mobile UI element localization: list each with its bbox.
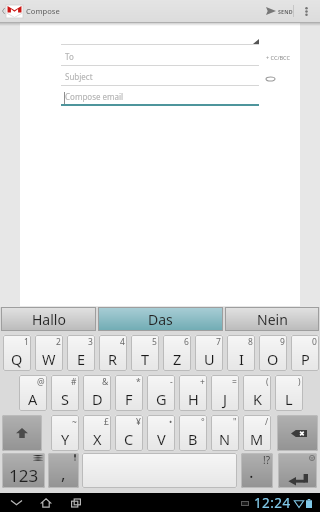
button[interactable]: Home <box>31 493 61 512</box>
button[interactable]: 8 <box>227 335 255 371</box>
button[interactable]: Attach file <box>264 74 277 83</box>
button[interactable]: 4 <box>99 335 127 371</box>
staticText: 6 <box>184 336 189 348</box>
staticText: + <box>200 376 205 388</box>
staticText: * <box>136 376 141 388</box>
button[interactable]: 7 <box>195 335 223 371</box>
staticText: 5 <box>152 336 157 348</box>
button[interactable]: & <box>83 375 111 411</box>
staticText: 9 <box>280 336 285 348</box>
button[interactable]: ~ <box>51 415 79 451</box>
button[interactable]: / <box>243 415 271 451</box>
staticText: 4 <box>120 336 125 348</box>
button[interactable]: ¥ <box>115 415 143 451</box>
staticText: B <box>188 429 198 449</box>
button[interactable]: Das <box>98 307 223 331</box>
staticText: O <box>267 349 279 369</box>
staticText: W <box>42 349 56 369</box>
staticText: 7 <box>216 336 221 348</box>
button[interactable]: ( <box>243 375 271 411</box>
staticText: M <box>250 429 264 449</box>
button[interactable]: Back <box>1 493 31 512</box>
staticText: ) <box>298 376 301 388</box>
button[interactable]: 3 <box>67 335 95 371</box>
button[interactable]: Backspace <box>277 415 318 451</box>
button[interactable]: 0 <box>291 335 319 371</box>
staticText: T <box>141 349 150 369</box>
button[interactable]: ° <box>179 415 207 451</box>
button[interactable]: = <box>211 375 239 411</box>
staticText: . <box>249 460 254 483</box>
button[interactable]: 1 <box>3 335 31 371</box>
staticText: E <box>77 349 86 369</box>
button[interactable]: - <box>147 375 175 411</box>
staticText: & <box>102 376 109 388</box>
button[interactable]: Space <box>82 453 237 488</box>
staticText: X <box>93 429 102 449</box>
button[interactable]: + CC/BCC <box>266 50 310 64</box>
button[interactable]: Enter <box>278 453 317 488</box>
staticText: - <box>170 376 173 388</box>
button[interactable]: Hallo <box>1 307 96 331</box>
staticText: J <box>223 389 227 409</box>
staticText: A <box>28 389 38 409</box>
button[interactable]: Navigate up <box>0 0 6 22</box>
staticText: I <box>239 349 244 369</box>
staticText: K <box>253 389 262 409</box>
button[interactable]: @ <box>19 375 47 411</box>
staticText: = <box>232 376 237 388</box>
button[interactable]: More options <box>296 0 317 22</box>
staticText: 8 <box>248 336 253 348</box>
button[interactable]: 2 <box>35 335 63 371</box>
staticText: £ <box>104 416 109 428</box>
button[interactable]: Shift <box>2 415 42 451</box>
staticText: 123 <box>9 464 39 487</box>
staticText: N <box>219 429 231 449</box>
button[interactable]: , <box>48 453 79 488</box>
staticText: 1 <box>24 336 29 348</box>
button[interactable]: " <box>211 415 239 451</box>
button[interactable]: Subject <box>61 69 259 86</box>
button[interactable]: Symbols <box>2 453 45 488</box>
staticText: Compose email <box>65 91 124 102</box>
staticText: F <box>125 389 133 409</box>
staticText: H <box>188 389 199 409</box>
staticText: Z <box>173 349 182 369</box>
button[interactable]: 9 <box>259 335 287 371</box>
button[interactable]: 6 <box>163 335 191 371</box>
staticText: Das <box>148 310 173 329</box>
button[interactable]: Recent apps <box>61 493 91 512</box>
staticText: Nein <box>257 310 288 329</box>
staticText: To <box>65 51 74 62</box>
button[interactable]: £ <box>83 415 111 451</box>
button[interactable]: • <box>147 415 175 451</box>
staticText: 12:24 <box>254 494 291 512</box>
button[interactable]: 5 <box>131 335 159 371</box>
staticText: Y <box>61 429 70 449</box>
button[interactable]: + <box>179 375 207 411</box>
staticText: ( <box>266 376 269 388</box>
staticText: 2 <box>56 336 61 348</box>
staticText: " <box>233 416 237 428</box>
staticText: + CC/BCC <box>266 54 290 61</box>
button[interactable]: SEND <box>262 0 296 22</box>
button[interactable]: ) <box>275 375 303 411</box>
staticText: ~ <box>72 416 77 428</box>
staticText: , <box>61 462 66 485</box>
button[interactable]: . <box>241 453 273 488</box>
staticText: / <box>265 416 269 428</box>
staticText: ° <box>201 416 205 428</box>
staticText: # <box>71 376 77 388</box>
button[interactable]: To <box>61 49 259 66</box>
staticText: Compose <box>26 6 60 16</box>
button[interactable]: # <box>51 375 79 411</box>
button[interactable]: * <box>115 375 143 411</box>
staticText: P <box>301 349 310 369</box>
button[interactable] <box>61 32 259 45</box>
button[interactable]: Compose email <box>61 89 259 106</box>
staticText: U <box>204 349 215 369</box>
staticText: V <box>157 429 166 449</box>
staticText: R <box>108 349 118 369</box>
staticText: @ <box>37 376 45 388</box>
button[interactable]: Nein <box>225 307 319 331</box>
